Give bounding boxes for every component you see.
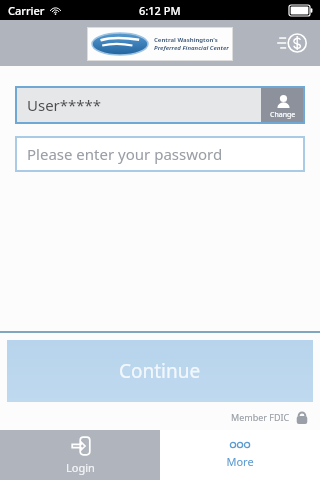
button[interactable]: Please enter your password	[15, 136, 305, 172]
staticText: Continue	[119, 358, 201, 384]
staticText: Central Washington's	[154, 36, 218, 44]
staticText: 6:12 PM	[139, 3, 181, 18]
staticText: Login	[66, 460, 95, 475]
button[interactable]: Quick balance	[276, 26, 310, 60]
button[interactable]: More	[160, 430, 320, 480]
button[interactable]: Login	[0, 430, 160, 480]
staticText: More	[226, 454, 254, 469]
staticText: Change	[270, 110, 296, 120]
button[interactable]: User*****	[15, 86, 305, 124]
staticText: User*****	[27, 95, 102, 115]
button[interactable]: Yakima Federal Savings logo	[87, 27, 233, 61]
staticText: Please enter your password	[27, 144, 223, 164]
staticText: Preferred Financial Center	[154, 44, 229, 52]
button[interactable]: Change	[261, 86, 305, 124]
button[interactable]: Continue	[7, 340, 313, 402]
staticText: Carrier	[8, 3, 45, 18]
staticText: Member FDIC	[231, 411, 290, 423]
